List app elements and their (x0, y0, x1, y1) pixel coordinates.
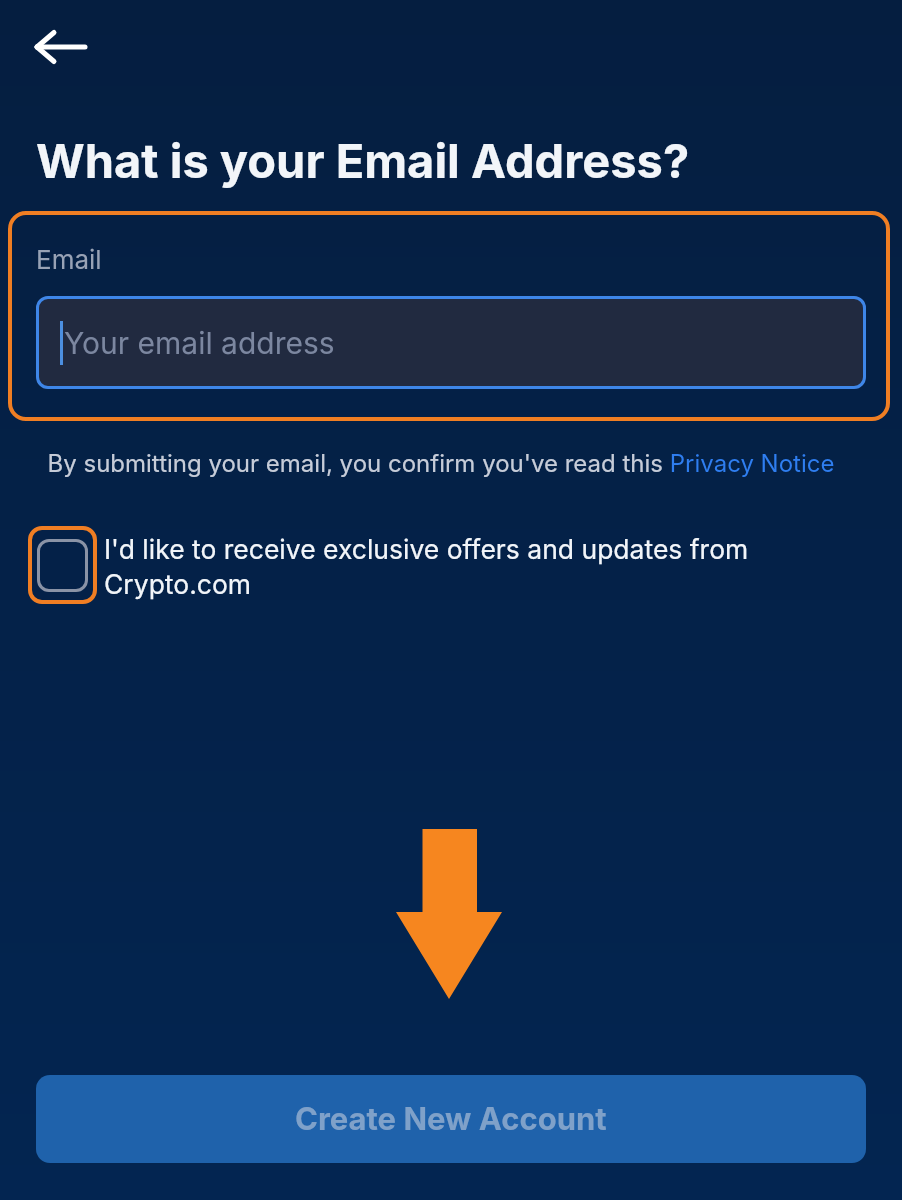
button[interactable] (24, 20, 96, 76)
button[interactable]: Create New Account (36, 1075, 866, 1163)
staticText: I'd like to receive exclusive offers and… (104, 533, 749, 600)
button[interactable]: Your email address (36, 296, 866, 389)
staticText: What is your Email Address? (36, 132, 690, 189)
staticText: Your email address (64, 325, 335, 361)
button[interactable] (37, 539, 88, 592)
staticText: Email (36, 244, 102, 275)
staticText: By submitting your email, you confirm yo… (0, 449, 892, 478)
staticText: Create New Account (295, 1100, 607, 1138)
